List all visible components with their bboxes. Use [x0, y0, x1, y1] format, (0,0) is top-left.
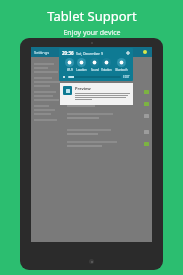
- staticText: Enjoy your device: [63, 28, 121, 38]
- button[interactable]: [68, 76, 121, 78]
- staticText: Sat, December 9: [76, 51, 103, 56]
- staticText: Sound: [91, 68, 99, 72]
- staticText: Bluetooth: [115, 68, 128, 72]
- staticText: Preview: [75, 86, 91, 91]
- staticText: Settings: [34, 50, 50, 55]
- button[interactable]: Sound: [90, 58, 99, 72]
- button[interactable]: [67, 141, 149, 147]
- staticText: Wi-Fi: [67, 68, 73, 72]
- button[interactable]: Settings: [126, 51, 130, 55]
- button[interactable]: Rotation: [101, 58, 112, 72]
- button[interactable]: [67, 89, 149, 95]
- button[interactable]: Bluetooth: [115, 58, 128, 72]
- staticText: Tablet Support: [47, 7, 137, 25]
- button[interactable]: [67, 129, 149, 135]
- staticText: Rotation: [101, 68, 112, 72]
- button[interactable]: Location: [76, 58, 87, 72]
- button[interactable]: Account: [143, 50, 147, 54]
- button[interactable]: Preview: [60, 83, 133, 105]
- button[interactable]: [67, 113, 149, 119]
- staticText: Location: [76, 68, 87, 72]
- button[interactable]: Wi-Fi: [65, 58, 74, 72]
- staticText: EDIT: [123, 75, 130, 79]
- staticText: 20:36: [62, 50, 74, 56]
- button[interactable]: [67, 101, 149, 107]
